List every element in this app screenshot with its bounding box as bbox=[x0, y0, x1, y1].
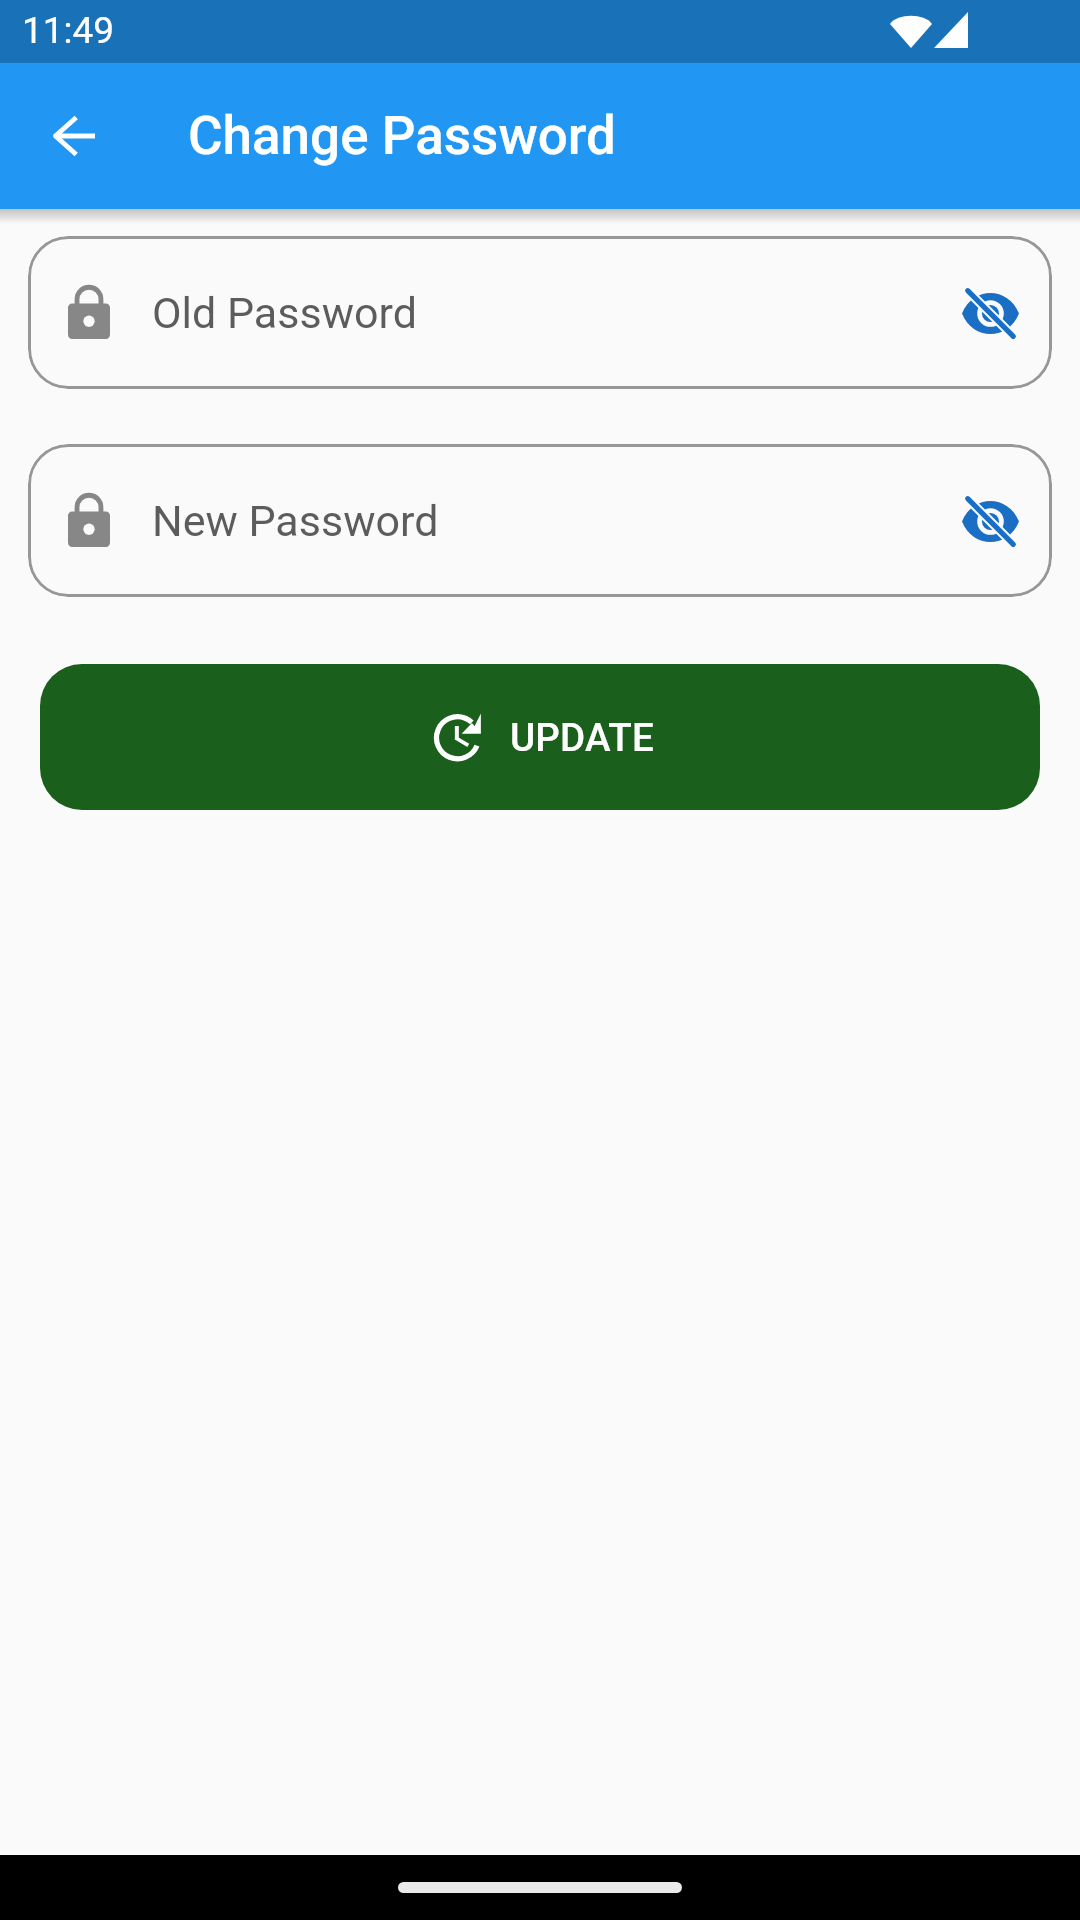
button[interactable]: Back bbox=[26, 88, 122, 184]
staticText: Old Password bbox=[152, 288, 417, 338]
staticText: New Password bbox=[152, 496, 439, 546]
staticText: 11:49 bbox=[22, 9, 115, 52]
button[interactable]: Toggle password visibility bbox=[948, 479, 1032, 563]
button[interactable]: Old Password bbox=[28, 236, 1052, 389]
button[interactable]: UPDATE bbox=[40, 664, 1040, 810]
button[interactable]: Toggle password visibility bbox=[948, 271, 1032, 355]
button[interactable]: New Password bbox=[28, 444, 1052, 597]
staticText: Change Password bbox=[188, 105, 616, 167]
staticText: UPDATE bbox=[510, 715, 654, 760]
